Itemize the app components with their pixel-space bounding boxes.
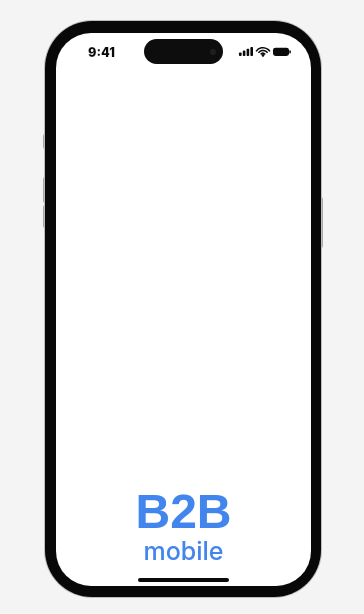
other: Wi-Fi: [257, 47, 269, 56]
button[interactable]: B2B: [135, 485, 232, 569]
other: Cellular signal: [239, 47, 253, 56]
staticText: mobile: [143, 536, 224, 566]
other: Battery full: [273, 47, 291, 56]
staticText: B2B: [135, 485, 232, 539]
staticText: 9:41: [88, 45, 115, 60]
